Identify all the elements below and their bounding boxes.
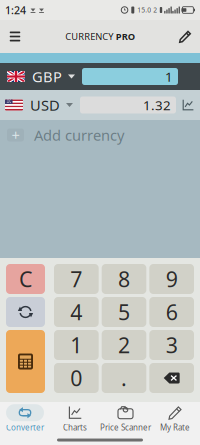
button[interactable]: Charts — [50, 402, 100, 435]
staticText: 8 — [118, 265, 130, 293]
staticText: 3 — [166, 331, 178, 359]
staticText: 1 — [70, 331, 82, 359]
button[interactable]: 6 — [149, 297, 194, 327]
staticText: 1 — [165, 68, 173, 85]
button[interactable] — [149, 363, 194, 393]
staticText: PRO — [116, 30, 135, 43]
staticText: Converter — [6, 422, 44, 433]
staticText: 0 — [70, 364, 82, 392]
button[interactable] — [6, 330, 45, 393]
button[interactable]: Edit — [172, 21, 198, 52]
staticText: 9 — [166, 265, 178, 293]
staticText: USD — [30, 95, 60, 115]
staticText: 1.32 — [143, 96, 171, 114]
staticText: My Rate — [160, 422, 190, 433]
staticText: CURRENCY — [65, 30, 113, 43]
staticText: 2 — [153, 6, 157, 14]
staticText: 7 — [70, 265, 82, 293]
button[interactable] — [6, 297, 45, 327]
button[interactable]: + — [0, 120, 200, 150]
staticText: GBP — [32, 67, 62, 86]
staticText: Price Scanner — [100, 422, 151, 433]
button[interactable]: USD — [0, 90, 200, 120]
button[interactable]: 4 — [54, 297, 99, 327]
button[interactable]: 1 — [54, 330, 99, 360]
button[interactable]: Price Scanner — [100, 402, 150, 435]
staticText: 2 — [118, 331, 130, 359]
button[interactable]: 3 — [149, 330, 194, 360]
staticText: 5 — [118, 298, 130, 326]
button[interactable]: Menu — [2, 21, 28, 52]
button[interactable]: . — [102, 363, 146, 393]
staticText: + — [11, 125, 19, 145]
button[interactable]: 0 — [54, 363, 99, 393]
button[interactable]: GBP — [0, 63, 200, 90]
staticText: 6 — [166, 298, 178, 326]
button[interactable]: 2 — [102, 330, 146, 360]
staticText: C — [19, 265, 32, 293]
button[interactable]: C — [6, 264, 45, 294]
button[interactable]: Converter — [0, 402, 50, 435]
staticText: 1:24 — [5, 3, 26, 17]
staticText: . — [121, 364, 127, 392]
staticText: 15.0 — [137, 6, 151, 14]
staticText: 4 — [70, 298, 82, 326]
button[interactable]: 9 — [149, 264, 194, 294]
button[interactable]: 8 — [102, 264, 146, 294]
button[interactable]: 7 — [54, 264, 99, 294]
staticText: Charts — [63, 422, 87, 433]
button[interactable]: My Rate — [150, 402, 200, 435]
staticText: Add currency — [34, 125, 124, 145]
button[interactable]: 5 — [102, 297, 146, 327]
